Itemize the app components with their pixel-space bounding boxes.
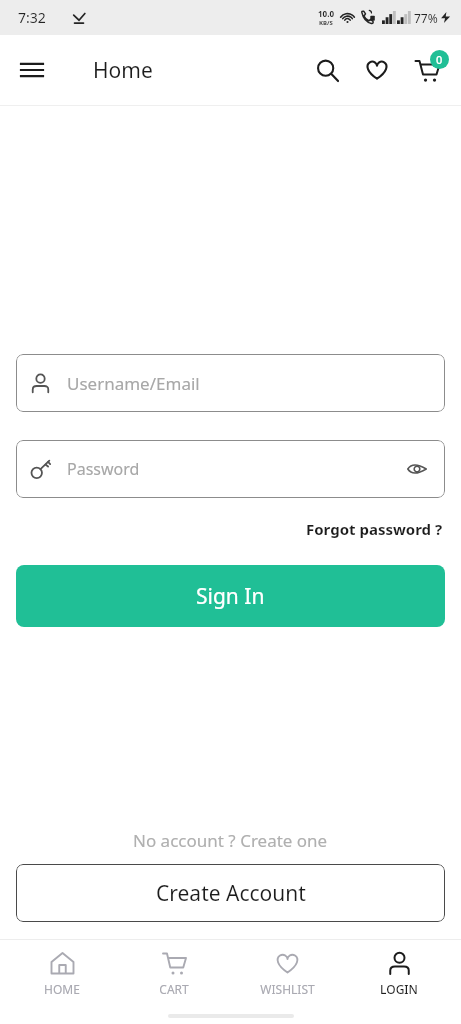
button[interactable]: Password bbox=[16, 440, 445, 498]
button[interactable]: Cart, 0 items bbox=[405, 48, 449, 92]
button[interactable]: CART bbox=[124, 945, 224, 1003]
staticText: Home bbox=[93, 56, 153, 85]
button[interactable]: Create Account bbox=[16, 864, 445, 922]
staticText: HOME bbox=[44, 981, 80, 997]
staticText: 7:32 bbox=[18, 8, 46, 27]
staticText: WISHLIST bbox=[260, 981, 315, 997]
staticText: Forgot password ? bbox=[306, 519, 443, 539]
button[interactable]: HOME bbox=[12, 945, 112, 1003]
staticText: 77% bbox=[414, 10, 438, 26]
button[interactable]: Search bbox=[305, 48, 349, 92]
staticText: KB/S bbox=[319, 19, 333, 27]
button[interactable]: No account ? Create one bbox=[129, 827, 332, 854]
button[interactable]: Forgot password ? bbox=[304, 517, 445, 541]
staticText: No account ? Create one bbox=[133, 829, 328, 852]
staticText: Create Account bbox=[156, 879, 306, 908]
staticText: Sign In bbox=[196, 582, 265, 611]
staticText: 0 bbox=[436, 52, 443, 67]
staticText: Username/Email bbox=[67, 372, 200, 395]
button[interactable]: Open navigation menu bbox=[8, 46, 56, 94]
staticText: Password bbox=[67, 458, 140, 480]
button[interactable]: WISHLIST bbox=[237, 945, 337, 1003]
button[interactable]: Wishlist bbox=[355, 48, 399, 92]
button[interactable]: Username/Email bbox=[16, 354, 445, 412]
staticText: CART bbox=[159, 981, 189, 997]
staticText: LOGIN bbox=[380, 981, 418, 997]
button[interactable]: Sign In bbox=[16, 565, 445, 627]
staticText: 10.0 bbox=[318, 8, 334, 19]
button[interactable]: LOGIN bbox=[349, 945, 449, 1003]
button[interactable]: Show password bbox=[397, 449, 437, 489]
